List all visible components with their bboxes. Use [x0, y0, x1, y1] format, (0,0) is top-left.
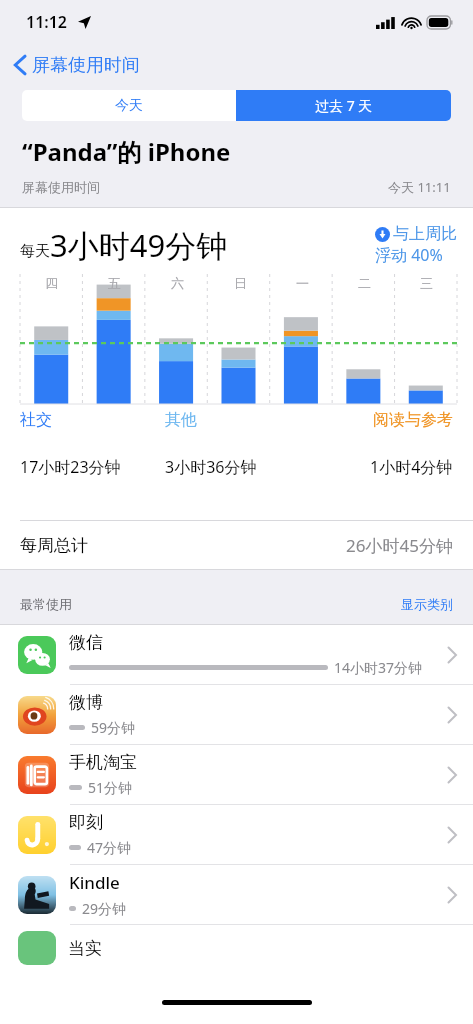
button[interactable]: 每周总计 — [0, 521, 473, 569]
staticText: 显示类别 — [401, 596, 453, 612]
staticText: 3小时49分钟 — [50, 224, 228, 266]
button[interactable]: 过去 7 天 — [236, 90, 451, 121]
button[interactable]: 即刻 — [0, 805, 473, 864]
staticText: 17小时23分钟 — [20, 456, 121, 478]
staticText: 五 — [108, 275, 121, 291]
staticText: 六 — [171, 275, 184, 291]
staticText: 其他 — [165, 410, 197, 430]
button[interactable]: 微信 — [0, 625, 473, 684]
staticText: 微信 — [69, 632, 103, 653]
staticText: 每天 — [20, 242, 50, 261]
staticText: 屏幕使用时间 — [32, 54, 140, 77]
staticText: 1小时4分钟 — [370, 456, 453, 478]
staticText: 3小时36分钟 — [165, 456, 257, 478]
button[interactable]: 屏幕使用时间 — [0, 44, 473, 86]
other: 查看详情 — [447, 826, 457, 844]
staticText: 社交 — [20, 410, 52, 430]
staticText: 微博 — [69, 692, 103, 713]
other: 查看详情 — [447, 646, 457, 664]
other: 查看详情 — [447, 886, 457, 904]
staticText: “Panda”的 iPhone — [22, 135, 231, 168]
staticText: 今天 11:11 — [388, 178, 451, 196]
other: 查看详情 — [447, 706, 457, 724]
staticText: 29分钟 — [82, 899, 127, 918]
button[interactable]: 显示类别 — [401, 596, 453, 612]
staticText: 59分钟 — [91, 718, 136, 737]
button[interactable]: 手机淘宝 — [0, 745, 473, 804]
staticText: 浮动 40% — [375, 244, 443, 266]
staticText: Kindle — [69, 871, 120, 894]
staticText: 每周总计 — [20, 535, 88, 556]
staticText: 过去 7 天 — [315, 96, 373, 115]
staticText: 最常使用 — [20, 596, 72, 612]
staticText: 47分钟 — [87, 838, 132, 857]
staticText: 14小时37分钟 — [334, 658, 423, 677]
button[interactable]: 微博 — [0, 685, 473, 744]
staticText: 一 — [296, 275, 309, 291]
button[interactable]: Kindle — [0, 865, 473, 924]
button[interactable]: 今天 — [22, 90, 236, 121]
staticText: 阅读与参考 — [373, 410, 453, 430]
staticText: 26小时45分钟 — [346, 534, 453, 557]
staticText: 四 — [45, 275, 58, 291]
staticText: 屏幕使用时间 — [22, 179, 100, 195]
staticText: 与上周比 — [393, 224, 457, 244]
staticText: 日 — [234, 275, 247, 291]
staticText: 即刻 — [69, 812, 103, 833]
other: 查看详情 — [447, 766, 457, 784]
staticText: 二 — [358, 275, 371, 291]
staticText: 今天 — [115, 97, 143, 115]
staticText: 当实 — [68, 938, 102, 959]
staticText: 11:12 — [26, 11, 68, 33]
staticText: 手机淘宝 — [69, 752, 137, 773]
staticText: 三 — [420, 275, 433, 291]
staticText: 51分钟 — [88, 778, 133, 797]
